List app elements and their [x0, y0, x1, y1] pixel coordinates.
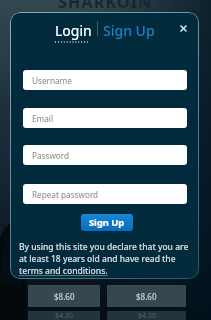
- staticText: SHARKOIN: [58, 0, 153, 13]
- staticText: By using this site you declare that you …: [19, 241, 189, 253]
- button[interactable]: Password: [23, 145, 187, 165]
- staticText: $4.30: [138, 311, 156, 320]
- button[interactable]: Close: [173, 18, 193, 38]
- button[interactable]: Sign Up: [81, 214, 133, 231]
- button[interactable]: Login: [55, 21, 92, 43]
- button[interactable]: Repeat password: [23, 184, 187, 204]
- button[interactable]: Email: [23, 108, 187, 128]
- staticText: Sign Up: [89, 216, 125, 229]
- button[interactable]: Sign Up: [103, 21, 155, 40]
- button[interactable]: terms and conditions.: [19, 265, 108, 277]
- staticText: $4.30: [55, 311, 73, 320]
- staticText: Email: [32, 113, 54, 124]
- staticText: $8.60: [136, 291, 157, 302]
- staticText: $8.60: [54, 291, 75, 302]
- staticText: Password: [32, 150, 70, 161]
- button[interactable]: Username: [23, 70, 187, 90]
- staticText: Repeat password: [32, 189, 99, 200]
- staticText: Login: [55, 21, 92, 40]
- staticText: Username: [32, 75, 72, 86]
- staticText: at least 18 years old and have read the: [19, 253, 176, 265]
